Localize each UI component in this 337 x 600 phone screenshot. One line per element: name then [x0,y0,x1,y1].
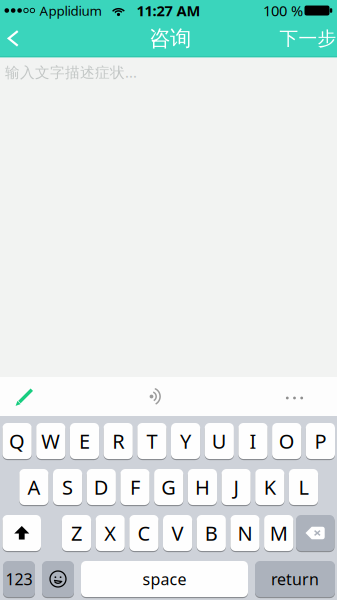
staticText: H [195,474,210,500]
button[interactable]: 下一步 [278,23,337,53]
staticText: W [41,428,60,454]
staticText: 11:27 AM [136,1,200,20]
button[interactable]: T [137,422,166,460]
staticText: C [137,520,150,546]
button[interactable]: X [96,514,125,552]
staticText: E [79,428,90,454]
button[interactable]: D [87,468,116,506]
staticText: J [234,474,239,500]
staticText: G [161,474,176,500]
button[interactable]: U [205,422,234,460]
button[interactable]: B [197,514,226,552]
staticText: N [237,520,252,546]
staticText: T [146,428,157,454]
staticText: L [298,474,308,500]
button[interactable]: M [264,514,293,552]
staticText: 100 % [263,1,303,20]
button[interactable]: K [255,468,284,506]
staticText: I [249,428,256,454]
staticText: B [205,520,218,546]
button[interactable]: C [129,514,158,552]
button[interactable]: F [120,468,150,506]
staticText: R [112,428,124,454]
button[interactable]: G [154,468,183,506]
button[interactable]: H [188,468,217,506]
staticText: Q [9,428,25,454]
button[interactable]: Q [2,422,32,460]
button[interactable]: J [221,468,251,506]
button[interactable]: W [36,422,65,460]
button[interactable]: Z [62,514,91,552]
staticText: 下一步 [279,27,336,50]
staticText: A [27,474,40,500]
staticText: M [270,520,288,546]
button[interactable] [296,514,334,552]
button[interactable]: space [81,560,248,598]
button[interactable] [2,514,41,552]
button[interactable]: A [19,468,48,506]
staticText: Z [71,520,82,546]
staticText: Y [180,428,191,454]
button[interactable]: N [230,514,260,552]
button[interactable] [148,386,164,406]
button[interactable]: P [306,422,335,460]
button[interactable]: 123 [3,560,35,598]
staticText: D [94,474,109,500]
button[interactable]: Y [171,422,200,460]
button[interactable]: R [104,422,133,460]
staticText: 咨询 [149,25,191,52]
staticText: P [314,428,326,454]
staticText: 输入文字描述症状... [5,62,137,82]
button[interactable] [281,388,307,408]
button[interactable] [3,27,25,49]
button[interactable]: E [70,422,99,460]
staticText: K [264,474,276,500]
staticText: Applidium [39,2,101,19]
staticText: space [142,568,186,590]
staticText: O [279,428,295,454]
button[interactable]: V [163,514,192,552]
staticText: return [271,568,319,590]
button[interactable]: I [238,422,268,460]
staticText: X [104,520,116,546]
staticText: 123 [5,568,32,590]
staticText: V [172,520,184,546]
button[interactable] [42,560,74,598]
button[interactable]: O [272,422,301,460]
button[interactable]: return [255,560,335,598]
button[interactable]: S [53,468,82,506]
button[interactable]: L [289,468,318,506]
staticText: U [212,428,227,454]
staticText: S [62,474,73,500]
button[interactable] [15,386,35,406]
staticText: F [130,474,140,500]
